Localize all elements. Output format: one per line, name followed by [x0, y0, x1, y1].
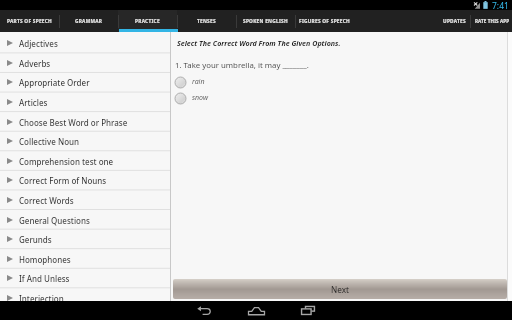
staticText: UPDATES [443, 18, 466, 25]
staticText: Collective Noun [19, 136, 80, 147]
staticText: Adverbs [19, 58, 51, 69]
button[interactable]: Comprehension test one [0, 151, 170, 171]
button[interactable]: rain [171, 74, 205, 90]
staticText: Next [331, 284, 349, 295]
button[interactable]: Recent apps [282, 301, 334, 320]
staticText: rain [192, 77, 205, 87]
button[interactable]: Choose Best Word or Phrase [0, 112, 170, 132]
staticText: Correct Form of Nouns [19, 175, 107, 186]
button[interactable]: Next [173, 279, 507, 299]
staticText: Correct Words [19, 195, 74, 206]
staticText: Adjectives [19, 38, 58, 49]
staticText: 1. Take your umbrella, it may _______. [175, 60, 309, 71]
button[interactable]: Adjectives [0, 33, 170, 53]
staticText: General Questions [19, 215, 90, 226]
button[interactable]: SPOKEN ENGLISH [236, 10, 295, 32]
button[interactable]: Appropriate Order [0, 72, 170, 92]
button[interactable]: PARTS OF SPEECH [0, 10, 59, 32]
staticText: TENSES [197, 18, 216, 25]
button[interactable]: Adverbs [0, 53, 170, 73]
staticText: RATE THIS APP [475, 18, 510, 24]
button[interactable]: Articles [0, 92, 170, 112]
button[interactable]: UPDATES [439, 10, 470, 32]
button[interactable]: Home [230, 301, 282, 320]
staticText: Homophones [19, 254, 71, 265]
staticText: FIGURES OF SPEECH [299, 18, 350, 25]
button[interactable]: Correct Words [0, 190, 170, 210]
staticText: Select The Correct Word From The Given O… [177, 38, 341, 48]
staticText: snow [192, 93, 208, 103]
staticText: PRACTICE [135, 18, 160, 25]
button[interactable]: PRACTICE [118, 10, 177, 32]
staticText: Interjection [19, 293, 64, 304]
staticText: Gerunds [19, 234, 52, 245]
button[interactable]: If And Unless [0, 268, 170, 288]
staticText: 7:41 [492, 0, 509, 10]
staticText: GRAMMAR [75, 18, 103, 25]
button[interactable]: Homophones [0, 249, 170, 269]
staticText: SPOKEN ENGLISH [243, 18, 288, 25]
button[interactable]: Back [178, 301, 230, 320]
button[interactable]: snow [171, 90, 208, 106]
button[interactable]: Collective Noun [0, 131, 170, 151]
button[interactable]: RATE THIS APP [471, 10, 512, 32]
button[interactable]: Gerunds [0, 229, 170, 249]
button[interactable]: General Questions [0, 210, 170, 230]
staticText: If And Unless [19, 273, 70, 284]
button[interactable]: Correct Form of Nouns [0, 170, 170, 190]
staticText: Articles [19, 97, 48, 108]
staticText: Appropriate Order [19, 77, 90, 88]
button[interactable]: Interjection [0, 288, 170, 308]
button[interactable]: FIGURES OF SPEECH [295, 10, 354, 32]
button[interactable]: TENSES [177, 10, 236, 32]
staticText: PARTS OF SPEECH [7, 18, 53, 25]
staticText: Choose Best Word or Phrase [19, 117, 128, 128]
button[interactable]: GRAMMAR [59, 10, 118, 32]
staticText: Comprehension test one [19, 156, 114, 167]
